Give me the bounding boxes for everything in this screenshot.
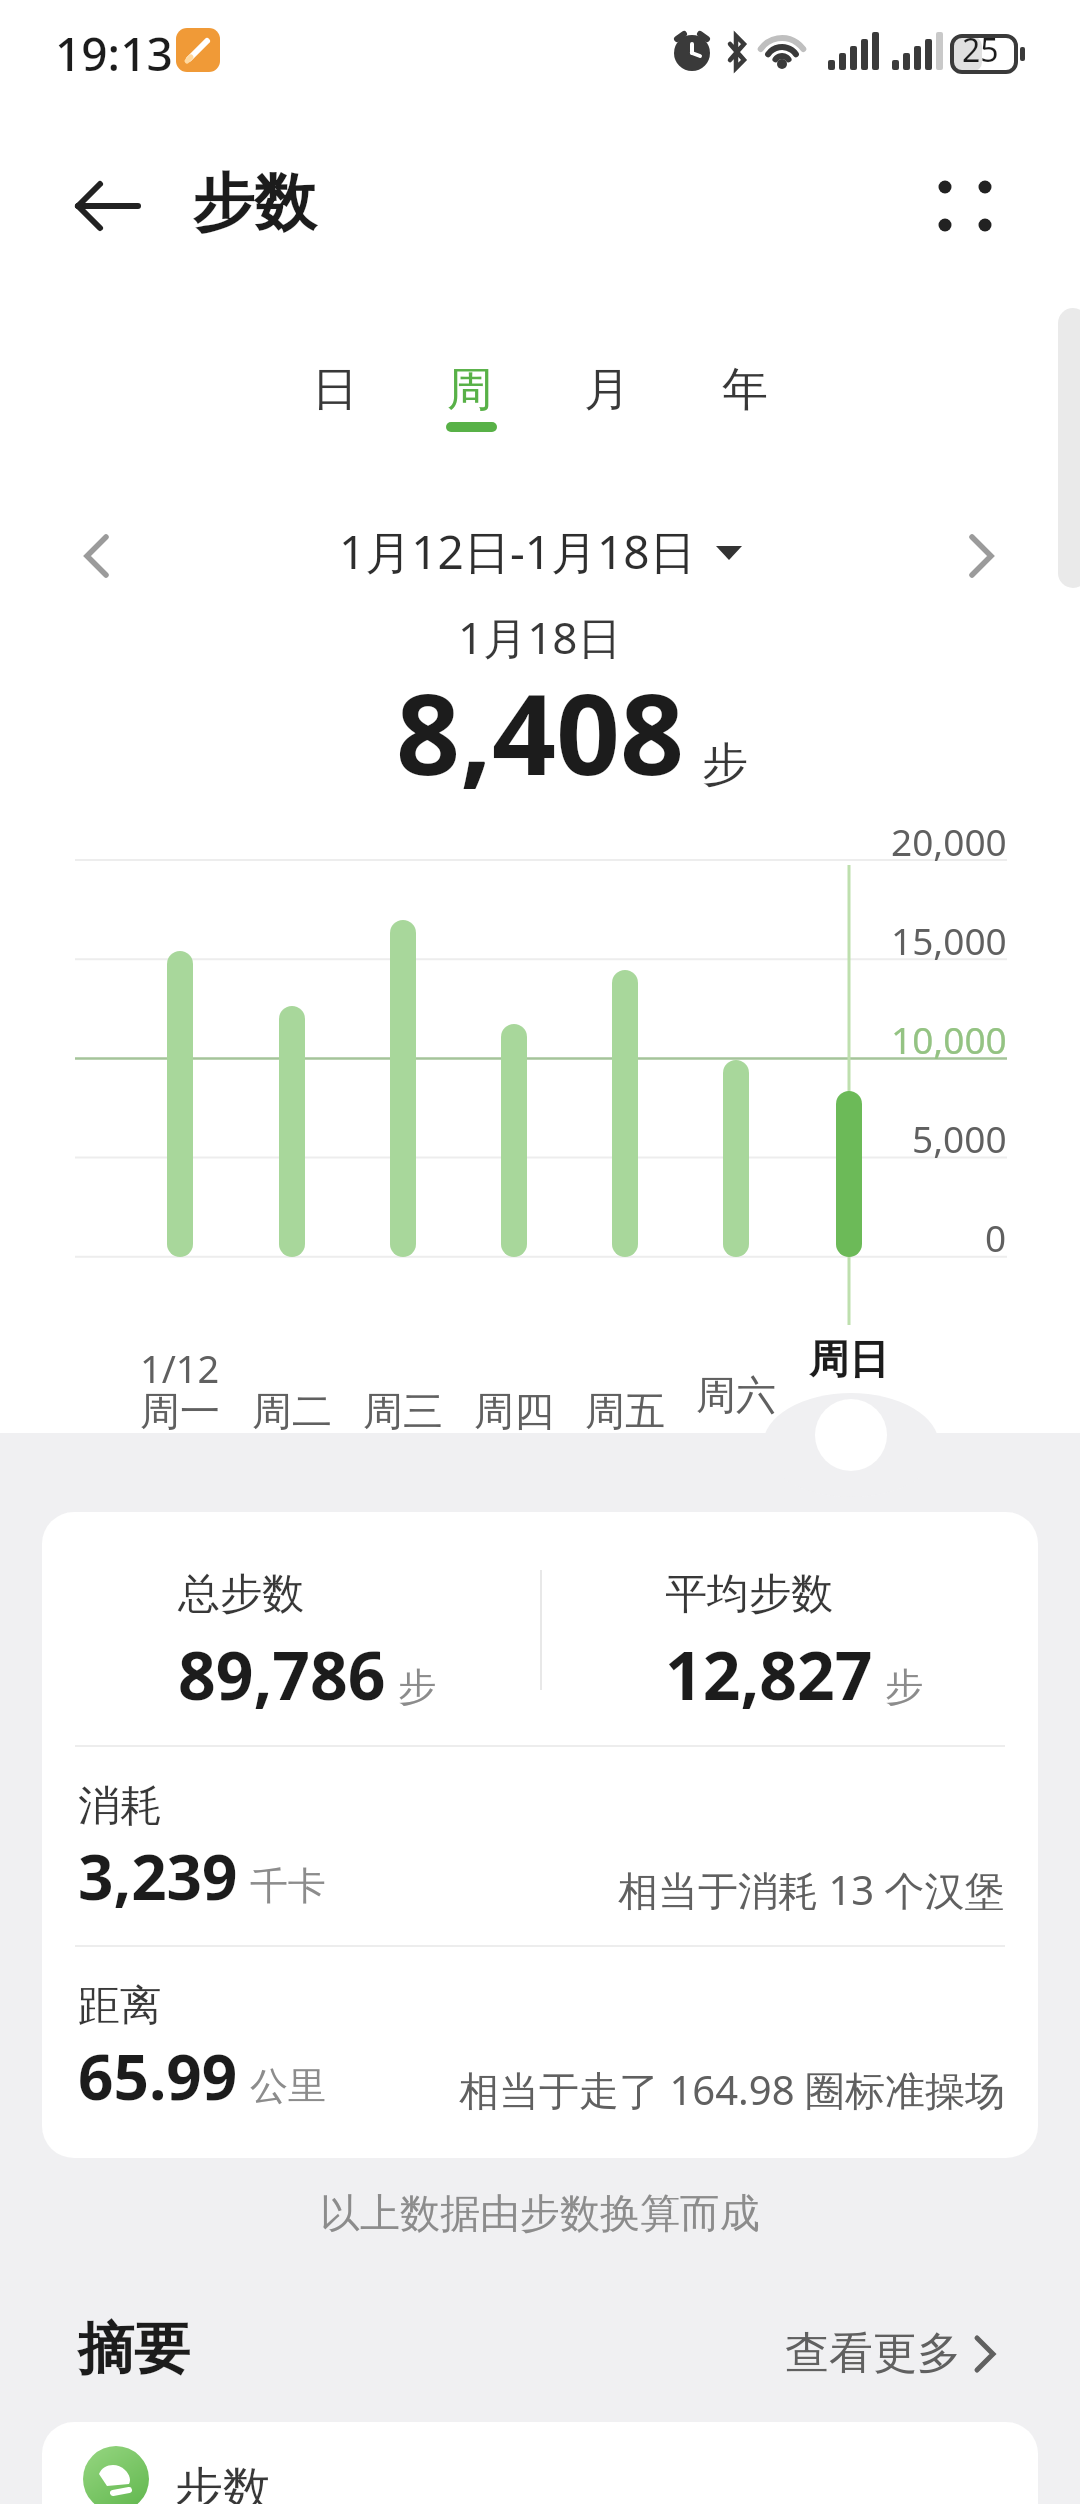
staticText: 总步数 xyxy=(178,1568,304,1621)
button[interactable] xyxy=(60,520,132,592)
staticText: 步 xyxy=(702,736,748,794)
staticText: 15,000 xyxy=(891,915,1007,961)
staticText: 12,827 xyxy=(665,1629,873,1719)
button[interactable]: 1月12日-1月18日 xyxy=(339,520,742,583)
staticText: 65.99 xyxy=(78,2034,238,2118)
button[interactable]: 月 xyxy=(557,340,657,440)
staticText: 10,000 xyxy=(891,1014,1007,1060)
staticText: 步数 xyxy=(192,164,316,242)
staticText: 1月18日 xyxy=(458,607,622,667)
staticText: 1/12 xyxy=(140,1342,220,1394)
button[interactable] xyxy=(946,520,1018,592)
staticText: 以上数据由步数换算而成 xyxy=(320,2188,760,2238)
staticText: 3,239 xyxy=(78,1834,238,1918)
staticText: 步数 xyxy=(175,2460,271,2504)
staticText: 5,000 xyxy=(912,1113,1007,1159)
staticText: 周三 xyxy=(363,1386,443,1436)
staticText: 25 xyxy=(962,28,999,72)
staticText: 1月12日-1月18日 xyxy=(339,520,696,583)
button[interactable]: 查看更多 xyxy=(785,2326,997,2381)
staticText: 相当于走了 164.98 圈标准操场 xyxy=(459,2062,1005,2117)
staticText: 摘要 xyxy=(78,2314,190,2385)
staticText: 步 xyxy=(885,1663,923,1711)
staticText: 周日 xyxy=(809,1334,889,1384)
button[interactable]: 年 xyxy=(695,340,795,440)
staticText: 20,000 xyxy=(891,816,1007,862)
staticText: 周 xyxy=(447,361,493,419)
staticText: 0 xyxy=(985,1212,1007,1258)
staticText: 月 xyxy=(584,361,630,419)
staticText: 查看更多 xyxy=(785,2326,961,2381)
staticText: 年 xyxy=(722,361,768,419)
staticText: 距离 xyxy=(78,1980,162,2033)
button[interactable]: 步数 xyxy=(42,2422,1038,2504)
staticText: 周四 xyxy=(474,1386,554,1436)
staticText: 周一 xyxy=(140,1386,220,1436)
staticText: 8,408 xyxy=(396,655,685,808)
staticText: 消耗 xyxy=(78,1780,162,1833)
staticText: 周二 xyxy=(252,1386,332,1436)
staticText: 千卡 xyxy=(250,1862,326,1910)
button[interactable] xyxy=(910,158,1020,254)
button[interactable] xyxy=(60,158,156,254)
staticText: 公里 xyxy=(250,2062,326,2110)
staticText: 19:13 xyxy=(55,22,173,85)
staticText: 日 xyxy=(312,361,358,419)
staticText: 89,786 xyxy=(178,1629,386,1719)
button[interactable]: 日 xyxy=(285,340,385,440)
staticText: 周六 xyxy=(696,1370,776,1420)
staticText: 平均步数 xyxy=(665,1568,833,1621)
staticText: 相当于消耗 13 个汉堡 xyxy=(618,1862,1005,1917)
staticText: 周五 xyxy=(585,1386,665,1436)
staticText: 步 xyxy=(398,1663,436,1711)
button[interactable]: 周 xyxy=(420,340,520,440)
